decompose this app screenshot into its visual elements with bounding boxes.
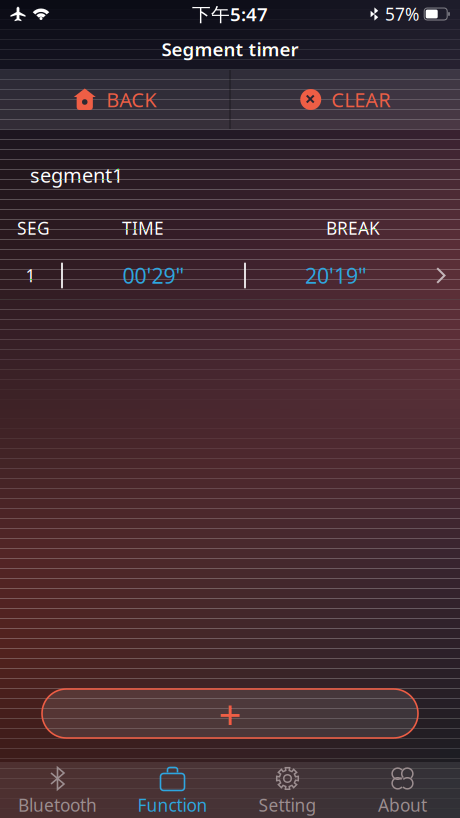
staticText: Bluetooth xyxy=(18,793,97,816)
staticText: Function xyxy=(137,793,207,816)
button[interactable]: Setting xyxy=(230,757,345,818)
button[interactable]: CLEAR xyxy=(230,70,460,129)
staticText: segment1 xyxy=(30,162,123,188)
button[interactable]: About xyxy=(345,757,460,818)
staticText: About xyxy=(378,793,427,816)
staticText: BACK xyxy=(106,86,156,113)
staticText: Setting xyxy=(258,793,316,816)
staticText: 57% xyxy=(385,2,419,25)
staticText: + xyxy=(218,687,241,740)
staticText: 00'29" xyxy=(122,261,184,290)
staticText: 1 xyxy=(25,264,35,287)
staticText: 20'19" xyxy=(305,261,367,290)
button[interactable]: Bluetooth xyxy=(0,757,115,818)
staticText: TIME xyxy=(122,216,164,239)
staticText: SEG xyxy=(17,216,50,239)
staticText: CLEAR xyxy=(331,86,390,113)
staticText: Segment timer xyxy=(161,37,298,61)
staticText: 下午5:47 xyxy=(192,2,268,26)
button[interactable]: Function xyxy=(115,757,230,818)
staticText: BREAK xyxy=(326,216,380,239)
button[interactable]: BACK xyxy=(0,70,229,129)
button[interactable]: Add segment xyxy=(0,689,460,738)
button[interactable]: 1 xyxy=(0,252,460,299)
